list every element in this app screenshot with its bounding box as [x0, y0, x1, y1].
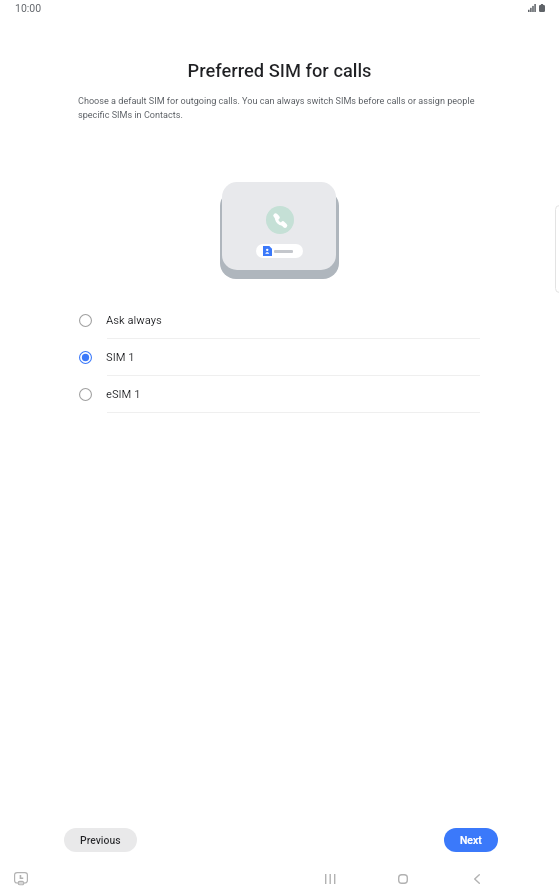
staticText: eSIM 1: [106, 388, 141, 401]
button[interactable]: Ask always: [0, 302, 559, 339]
staticText: Next: [460, 834, 482, 846]
staticText: 10:00: [15, 2, 42, 14]
button[interactable]: Home: [391, 867, 415, 891]
staticText: Choose a default SIM for outgoing calls.…: [78, 96, 482, 121]
staticText: SIM 1: [106, 351, 135, 364]
button[interactable]: Next: [444, 828, 498, 852]
staticText: Previous: [80, 834, 121, 846]
button[interactable]: eSIM 1: [0, 376, 559, 413]
button[interactable]: Accessibility: [9, 866, 33, 890]
staticText: Preferred SIM for calls: [0, 60, 559, 81]
button[interactable]: Previous: [64, 828, 137, 852]
button[interactable]: SIM 1: [0, 339, 559, 376]
staticText: Ask always: [106, 314, 162, 327]
button[interactable]: Back: [465, 867, 489, 891]
button[interactable]: Recent apps: [317, 867, 341, 891]
